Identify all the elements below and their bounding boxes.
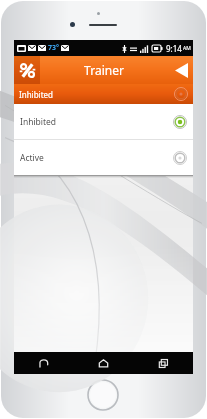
button[interactable]: Select option <box>173 115 187 129</box>
button[interactable]: Back <box>14 352 73 374</box>
staticText: 9:14 <box>166 43 182 54</box>
button[interactable]: Back <box>169 56 193 84</box>
staticText: 73° <box>48 43 59 53</box>
button[interactable]: Select option <box>173 151 187 165</box>
button[interactable]: Inhibited <box>14 104 193 139</box>
button[interactable]: Home <box>73 352 133 374</box>
staticText: Inhibited <box>19 89 174 100</box>
staticText: AM <box>183 45 191 52</box>
button[interactable]: Active <box>14 140 193 175</box>
button[interactable]: Select option <box>174 87 188 101</box>
button[interactable]: App logo <box>14 56 40 84</box>
staticText: Inhibited <box>20 116 173 128</box>
staticText: Trainer <box>84 62 124 78</box>
staticText: Active <box>20 152 173 164</box>
button[interactable]: Inhibited <box>14 84 193 104</box>
button[interactable]: Recent apps <box>133 352 193 374</box>
